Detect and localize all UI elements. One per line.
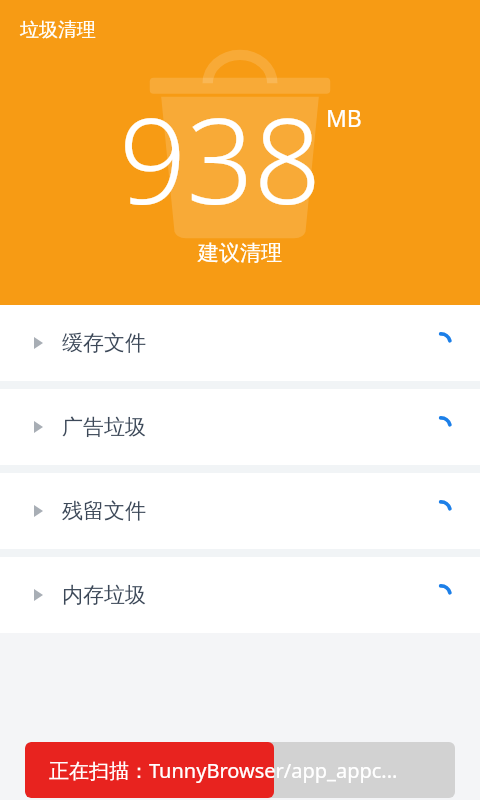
button[interactable]: 内存垃圾 <box>0 557 480 633</box>
staticText: 广告垃圾 <box>62 414 146 440</box>
button[interactable]: 残留文件 <box>0 473 480 549</box>
staticText: 正在扫描：TunnyBrowser/app_appc... <box>49 757 398 784</box>
button[interactable]: 缓存文件 <box>0 305 480 381</box>
staticText: 建议清理 <box>198 240 282 266</box>
staticText: 垃圾清理 <box>20 18 96 42</box>
staticText: 缓存文件 <box>62 330 146 356</box>
staticText: 938 <box>119 78 322 239</box>
staticText: MB <box>326 102 362 133</box>
staticText: 残留文件 <box>62 498 146 524</box>
button[interactable]: 垃圾清理 <box>14 12 102 48</box>
button[interactable]: 广告垃圾 <box>0 389 480 465</box>
button[interactable]: 正在扫描 <box>25 742 455 798</box>
staticText: 内存垃圾 <box>62 582 146 608</box>
